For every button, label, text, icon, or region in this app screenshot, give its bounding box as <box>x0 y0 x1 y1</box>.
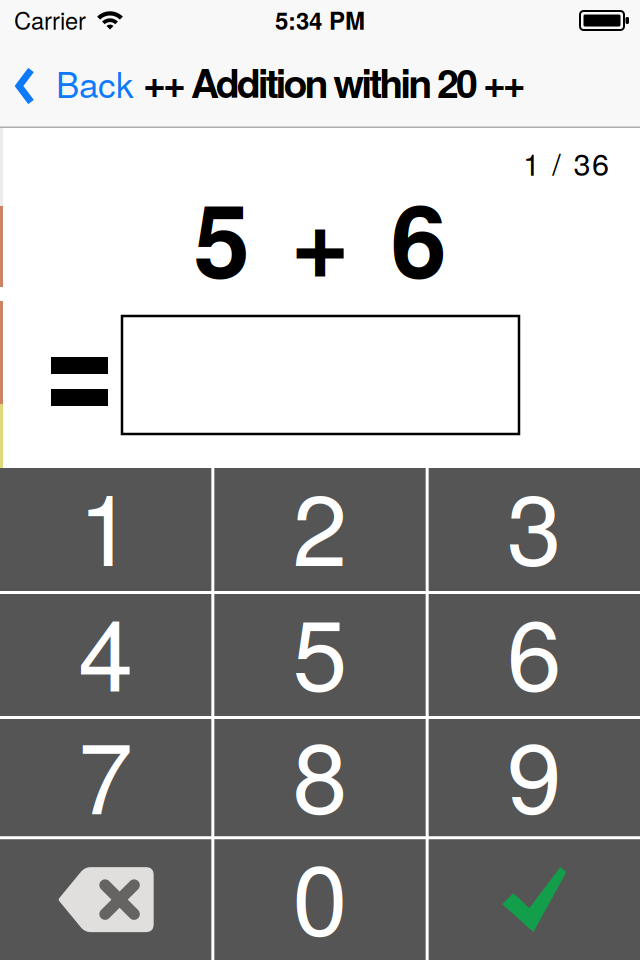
button[interactable]: 5 <box>214 594 426 716</box>
staticText: 4 <box>78 578 133 720</box>
button[interactable] <box>122 316 519 434</box>
button[interactable]: 7 <box>0 719 211 836</box>
button[interactable]: 3 <box>429 468 640 591</box>
button[interactable]: 1 <box>0 468 211 591</box>
staticText: 5:34 PM <box>275 3 365 37</box>
button[interactable] <box>0 839 211 960</box>
staticText: Carrier <box>14 2 86 36</box>
staticText: 0 <box>292 823 347 960</box>
staticText: 3 <box>507 453 562 594</box>
button[interactable]: 2 <box>214 468 426 591</box>
staticText: 9 <box>507 701 562 842</box>
staticText: 5 <box>292 578 347 720</box>
button[interactable]: 8 <box>214 719 426 836</box>
staticText: Back <box>56 58 133 108</box>
button[interactable]: 0 <box>214 839 426 960</box>
button[interactable]: 6 <box>429 594 640 716</box>
staticText: 1 / 36 <box>523 140 609 184</box>
staticText: 7 <box>78 701 133 842</box>
staticText: ++ Addition within 20 ++ <box>143 54 526 110</box>
staticText: 5 + 6 <box>193 164 446 309</box>
button[interactable]: 9 <box>429 719 640 836</box>
staticText: 1 <box>78 453 133 594</box>
staticText: 2 <box>292 453 347 594</box>
button[interactable] <box>429 839 640 960</box>
staticText: 8 <box>292 701 347 842</box>
button[interactable]: 4 <box>0 594 211 716</box>
staticText: 6 <box>507 578 562 720</box>
button[interactable]: Back <box>16 56 131 96</box>
